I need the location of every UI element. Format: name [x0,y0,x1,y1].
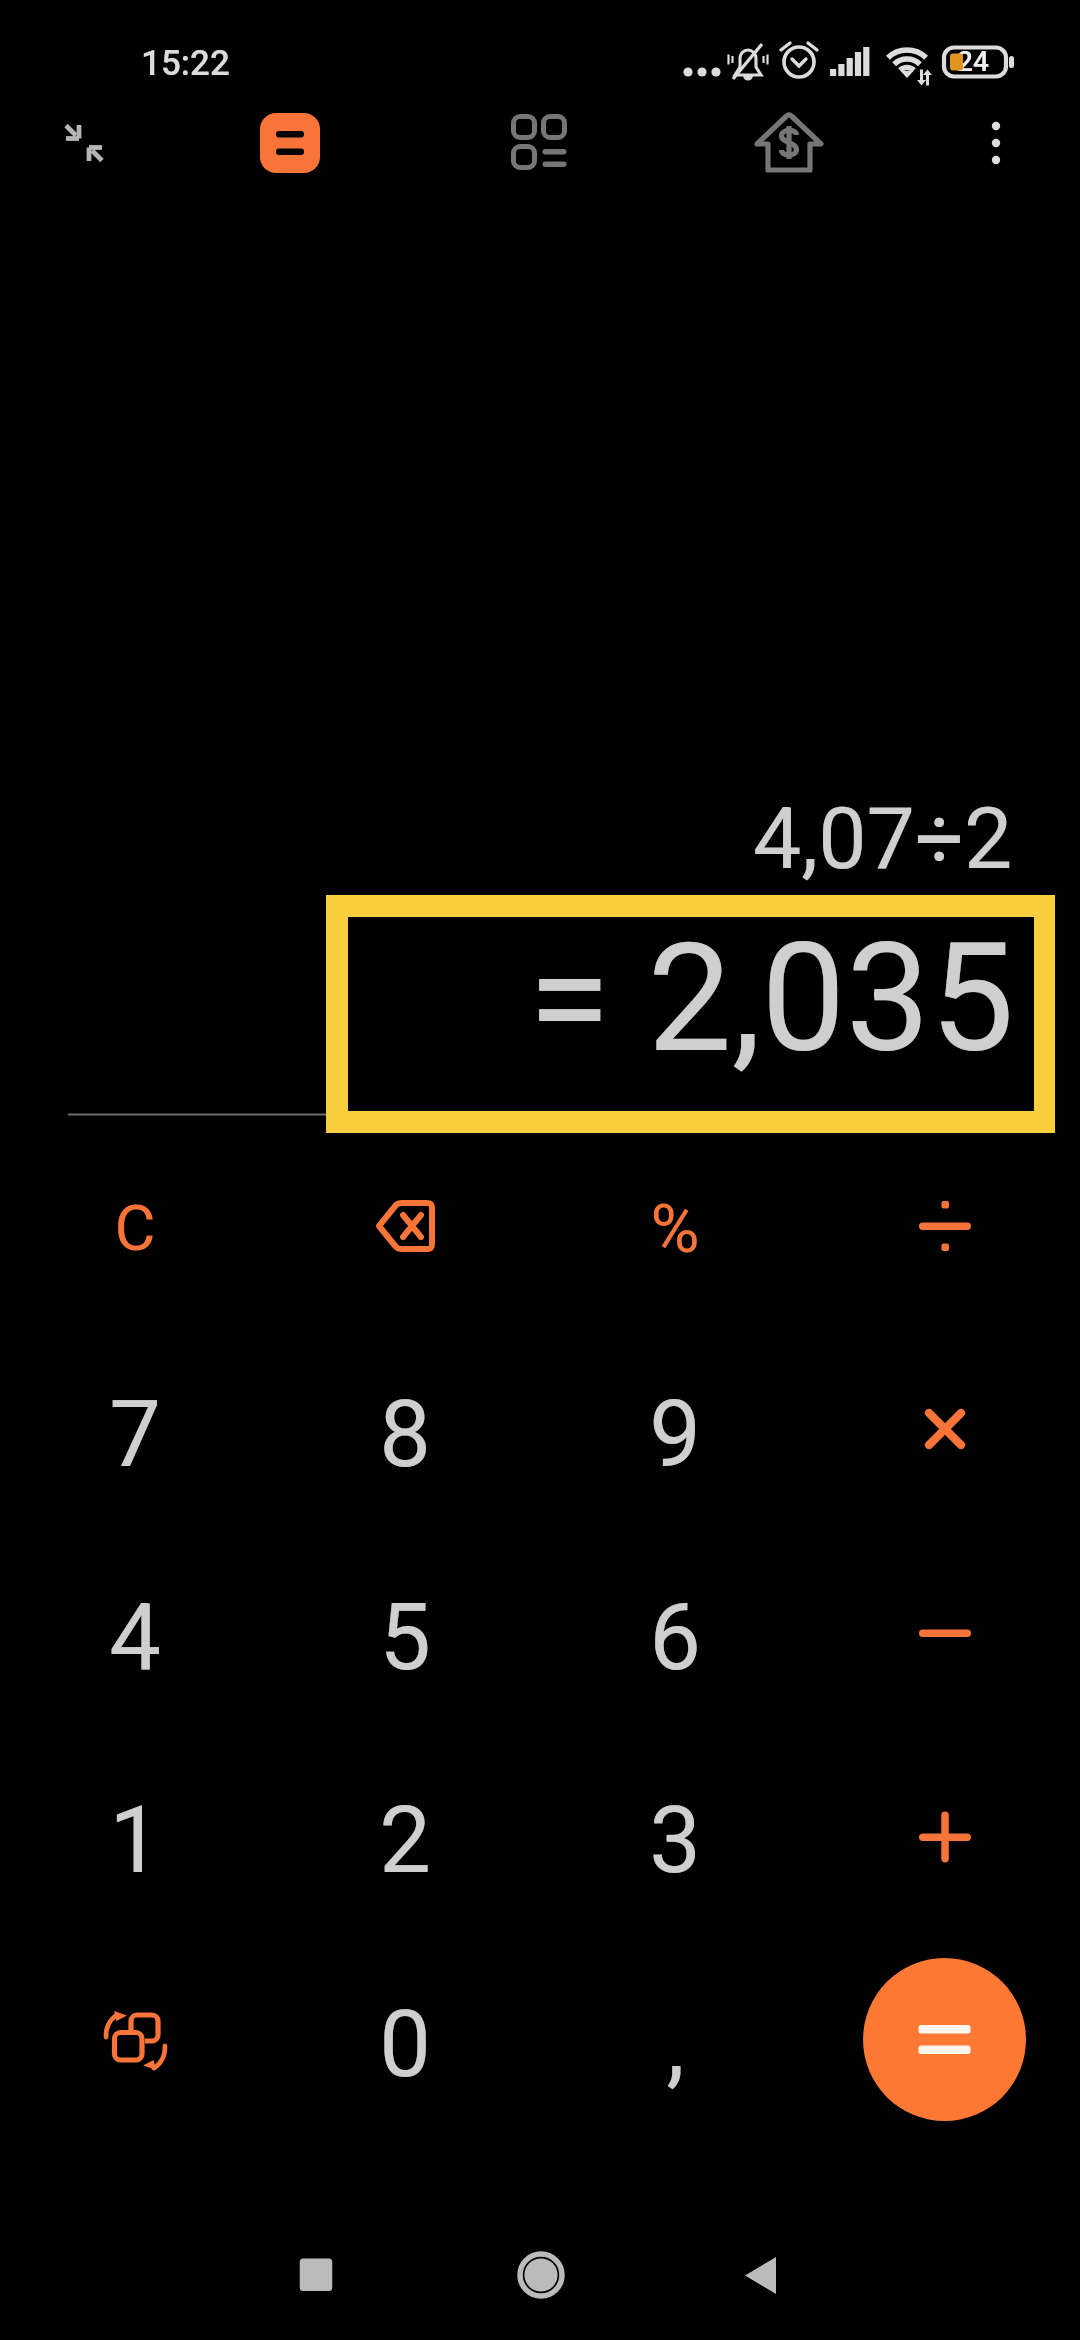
button[interactable]: Unit converter [499,102,579,182]
staticText: 24 [957,45,989,78]
button[interactable]: = 2,035 [326,895,1055,1133]
staticText: C [114,1192,156,1266]
staticText: 2 [379,1787,431,1895]
button[interactable]: Plus [810,1736,1080,1940]
staticText: 5 [379,1584,431,1692]
button[interactable]: Collapse [44,103,124,183]
button[interactable]: Equals [863,1958,1026,2121]
button[interactable]: Backspace [270,1124,540,1328]
button[interactable]: 5 [270,1536,540,1740]
button[interactable]: Multiply [810,1330,1080,1534]
button[interactable]: More options [956,103,1036,183]
button[interactable]: Calculator [260,113,320,173]
button[interactable]: 2 [270,1739,540,1943]
staticText: 4 [109,1584,161,1692]
button[interactable]: Recent apps [256,2235,376,2315]
button[interactable]: 8 [270,1333,540,1537]
staticText: 15:22 [141,43,230,84]
button[interactable]: 6 [540,1536,810,1740]
staticText: 3 [649,1787,701,1895]
button[interactable]: , [540,1943,810,2147]
button[interactable]: % [540,1127,810,1331]
staticText: , [666,1991,685,2099]
staticText: 9 [649,1381,701,1489]
button[interactable]: 3 [540,1739,810,1943]
staticText: % [650,1190,700,1269]
button[interactable]: 7 [0,1333,270,1537]
button[interactable]: C [0,1127,270,1331]
button[interactable]: Mortgage [749,103,829,183]
button[interactable]: Home [481,2235,601,2315]
button[interactable]: Convert [0,1940,270,2144]
staticText: 0 [379,1991,431,2099]
button[interactable]: 0 [270,1943,540,2147]
button[interactable]: Minus [810,1533,1080,1737]
staticText: 4,07÷2 [753,788,1013,889]
button[interactable]: 4 [0,1536,270,1740]
staticText: 1 [109,1787,161,1895]
staticText: 7 [109,1381,161,1489]
staticText: 6 [649,1584,701,1692]
button[interactable]: Divide [810,1124,1080,1328]
button[interactable]: 1 [0,1739,270,1943]
button[interactable]: Back [700,2235,820,2315]
button[interactable]: 9 [540,1333,810,1537]
staticText: = 2,035 [528,911,1015,1087]
staticText: 8 [379,1381,431,1489]
